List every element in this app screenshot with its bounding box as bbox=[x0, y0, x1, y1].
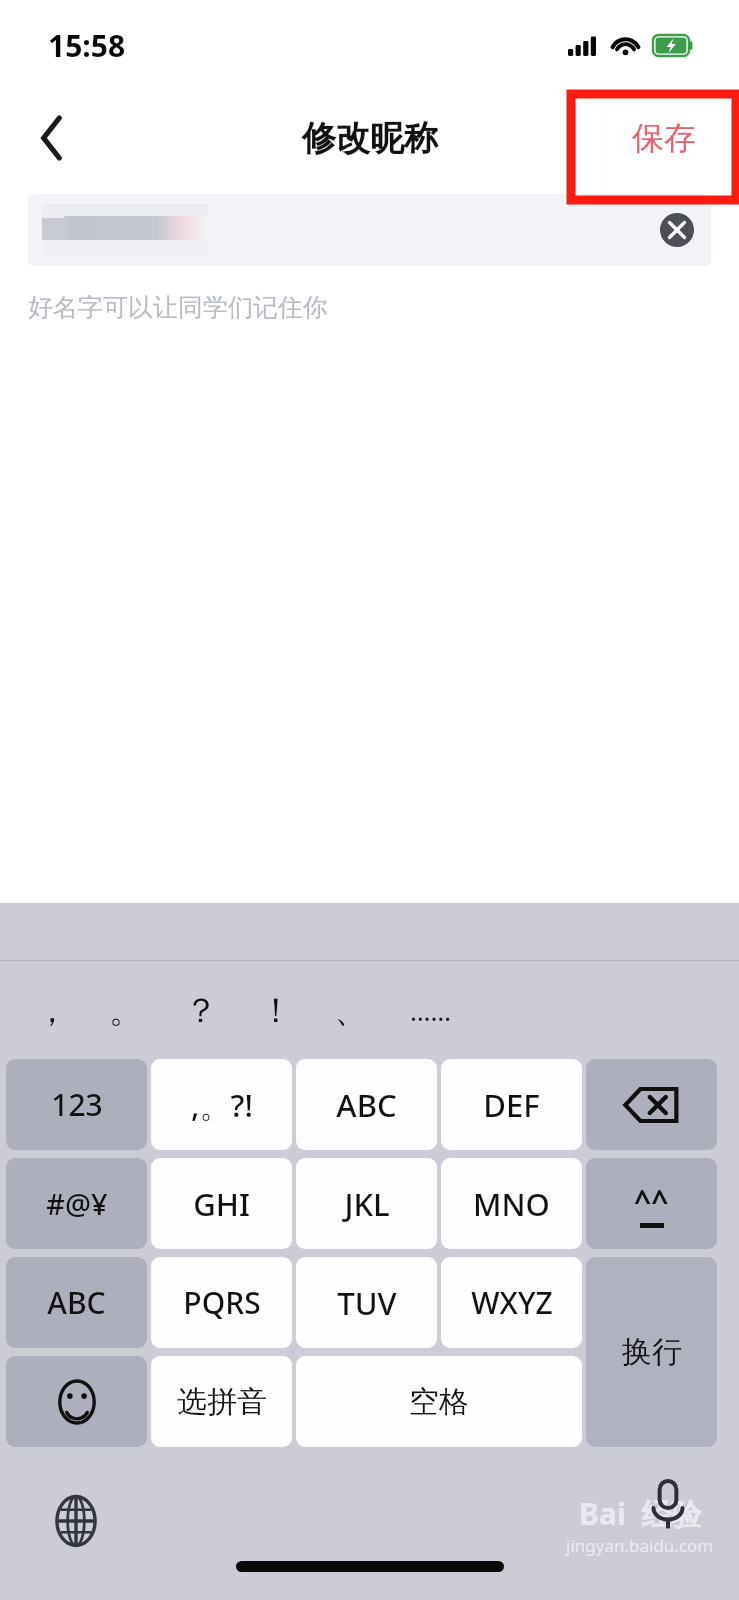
button[interactable]: Clear text bbox=[655, 208, 699, 252]
staticText: 。 bbox=[109, 989, 143, 1032]
button[interactable]: Kaomoji bbox=[586, 1158, 717, 1249]
button[interactable]: #@¥ bbox=[6, 1158, 147, 1249]
button[interactable]: 、 bbox=[315, 961, 387, 1059]
staticText: 空格 bbox=[409, 1383, 469, 1421]
button[interactable]: TUV bbox=[296, 1257, 437, 1348]
button[interactable]: ， bbox=[16, 961, 88, 1059]
staticText: 换行 bbox=[622, 1333, 682, 1371]
staticText: ， bbox=[35, 989, 69, 1032]
button[interactable]: DEF bbox=[441, 1059, 582, 1150]
staticText: DEF bbox=[483, 1084, 540, 1126]
staticText: 保存 bbox=[632, 118, 696, 158]
button[interactable]: Voice input bbox=[640, 1477, 696, 1533]
button[interactable]: JKL bbox=[296, 1158, 437, 1249]
button[interactable]: WXYZ bbox=[441, 1257, 582, 1348]
button[interactable]: Backspace bbox=[586, 1059, 717, 1150]
staticText: 15:58 bbox=[48, 25, 126, 66]
button[interactable]: 保存 bbox=[589, 86, 739, 190]
button[interactable]: ！ bbox=[240, 961, 312, 1059]
button[interactable]: 。 bbox=[90, 961, 162, 1059]
button[interactable]: 换行 bbox=[586, 1257, 717, 1447]
button[interactable]: Emoji bbox=[6, 1356, 147, 1447]
button[interactable]: PQRS bbox=[151, 1257, 292, 1348]
staticText: WXYZ bbox=[471, 1282, 553, 1323]
staticText: ！ bbox=[259, 989, 293, 1032]
staticText: Bai 经验 bbox=[579, 1493, 702, 1534]
staticText: ABC bbox=[336, 1084, 397, 1126]
staticText: 选拼音 bbox=[177, 1383, 267, 1421]
staticText: jingyan.baidu.com bbox=[566, 1534, 714, 1557]
button[interactable]: …… bbox=[395, 961, 467, 1059]
staticText: 修改昵称 bbox=[302, 117, 438, 160]
button[interactable]: ？ bbox=[165, 961, 237, 1059]
staticText: GHI bbox=[193, 1183, 250, 1225]
button[interactable]: 选拼音 bbox=[151, 1356, 292, 1447]
staticText: ABC bbox=[47, 1282, 106, 1323]
button[interactable]: 123 bbox=[6, 1059, 147, 1150]
staticText: ？ bbox=[184, 989, 218, 1032]
button[interactable]: Back bbox=[0, 86, 104, 190]
button[interactable]: Switch keyboard bbox=[44, 1489, 108, 1553]
staticText: 、 bbox=[334, 989, 368, 1032]
button[interactable]: Clear text bbox=[28, 194, 711, 266]
staticText: MNO bbox=[473, 1183, 550, 1225]
staticText: 好名字可以让同学们记住你 bbox=[28, 292, 328, 323]
button[interactable]: 空格 bbox=[296, 1356, 582, 1447]
button[interactable]: GHI bbox=[151, 1158, 292, 1249]
staticText: 123 bbox=[51, 1084, 103, 1125]
staticText: #@¥ bbox=[46, 1184, 108, 1223]
staticText: …… bbox=[410, 993, 452, 1028]
button[interactable]: ABC bbox=[6, 1257, 147, 1348]
button[interactable]: ,。?! bbox=[151, 1059, 292, 1150]
button[interactable]: MNO bbox=[441, 1158, 582, 1249]
button[interactable]: ABC bbox=[296, 1059, 437, 1150]
staticText: JKL bbox=[344, 1183, 390, 1225]
staticText: ,。?! bbox=[191, 1084, 253, 1126]
staticText: TUV bbox=[337, 1282, 397, 1324]
staticText: PQRS bbox=[183, 1282, 261, 1323]
staticText: ^^ bbox=[634, 1180, 669, 1221]
